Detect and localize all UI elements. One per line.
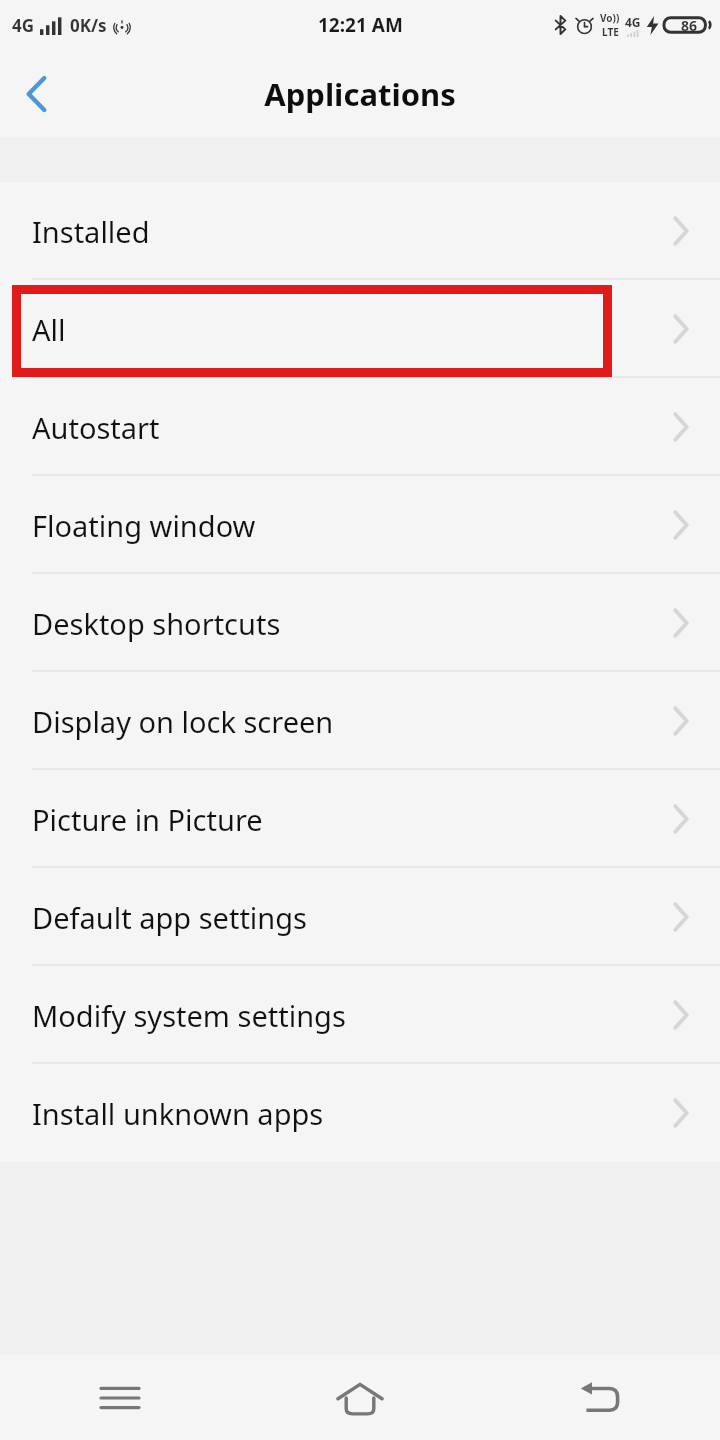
- staticText: Modify system settings: [32, 996, 346, 1035]
- button[interactable]: Recent apps: [0, 1355, 240, 1440]
- button[interactable]: Picture in Picture: [0, 770, 720, 868]
- staticText: Installed: [32, 212, 150, 251]
- button[interactable]: Home: [240, 1355, 480, 1440]
- staticText: Floating window: [32, 506, 256, 545]
- button[interactable]: Floating window: [0, 476, 720, 574]
- button[interactable]: Back: [480, 1355, 720, 1440]
- button[interactable]: Autostart: [0, 378, 720, 476]
- button[interactable]: Modify system settings: [0, 966, 720, 1064]
- button[interactable]: Installed: [0, 182, 720, 280]
- staticText: 4G: [625, 14, 641, 30]
- button[interactable]: Display on lock screen: [0, 672, 720, 770]
- button[interactable]: All: [0, 280, 720, 378]
- staticText: Install unknown apps: [32, 1094, 324, 1133]
- button[interactable]: Install unknown apps: [0, 1064, 720, 1162]
- staticText: Applications: [264, 73, 456, 115]
- button[interactable]: Back: [0, 57, 74, 131]
- staticText: Vo)): [600, 11, 620, 25]
- staticText: 4G: [12, 14, 35, 37]
- button[interactable]: Desktop shortcuts: [0, 574, 720, 672]
- staticText: 0K/s: [70, 14, 107, 37]
- staticText: LTE: [602, 25, 619, 39]
- staticText: Desktop shortcuts: [32, 604, 281, 643]
- staticText: 12:21 AM: [318, 12, 403, 38]
- staticText: Picture in Picture: [32, 800, 263, 839]
- staticText: Autostart: [32, 408, 160, 447]
- button[interactable]: Default app settings: [0, 868, 720, 966]
- staticText: 86: [681, 16, 698, 35]
- staticText: Default app settings: [32, 898, 307, 937]
- staticText: Display on lock screen: [32, 702, 334, 741]
- staticText: All: [32, 310, 66, 349]
